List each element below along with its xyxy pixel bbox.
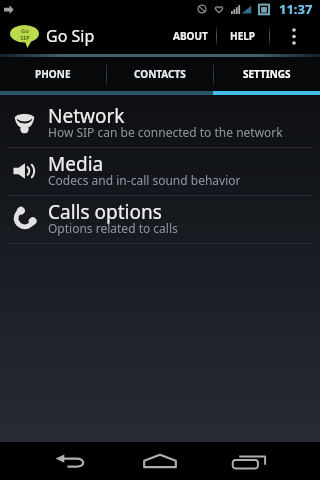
staticText: CONTACTS [134, 67, 186, 81]
button[interactable]: Network [0, 100, 320, 147]
button[interactable]: HELP [217, 18, 269, 54]
staticText: Media [48, 151, 104, 177]
staticText: ABOUT [173, 29, 208, 43]
button[interactable]: SETTINGS [213, 57, 320, 95]
staticText: SETTINGS [243, 67, 291, 81]
button[interactable]: Recent apps [205, 442, 295, 480]
staticText: Options related to calls [48, 220, 178, 236]
other: Network [14, 112, 35, 134]
staticText: HELP [230, 29, 256, 43]
button[interactable]: Back [25, 442, 115, 480]
staticText: Codecs and in-call sound behavior [48, 172, 241, 188]
staticText: Go Sip [46, 25, 95, 47]
button[interactable]: Media [0, 148, 320, 195]
button[interactable]: ABOUT [164, 18, 216, 54]
button[interactable]: Calls options [0, 196, 320, 243]
button[interactable]: More options [270, 18, 318, 54]
staticText: Go SIP [20, 27, 30, 41]
button[interactable]: CONTACTS [106, 57, 213, 95]
other: Calls options [12, 207, 36, 231]
button[interactable]: PHONE [0, 57, 106, 95]
staticText: PHONE [35, 67, 71, 81]
other: Media [13, 163, 36, 179]
staticText: How SIP can be connected to the network [48, 124, 283, 140]
staticText: Network [48, 103, 125, 129]
staticText: Calls options [48, 199, 162, 225]
staticText: 11:37 [279, 0, 313, 18]
button[interactable]: Home [115, 442, 205, 480]
